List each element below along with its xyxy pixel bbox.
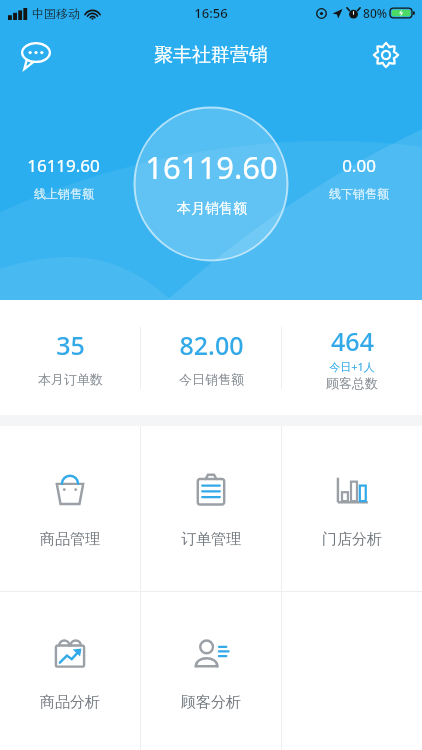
staticText: 本月订单数 (38, 371, 103, 387)
button[interactable]: 顾客分析 (141, 592, 281, 750)
button[interactable]: 门店分析 (282, 426, 422, 591)
button[interactable]: 82.00 (141, 300, 281, 415)
button[interactable]: 商品分析 (0, 592, 140, 750)
staticText: 订单管理 (181, 530, 241, 549)
staticText: 464 (331, 324, 374, 358)
staticText: 今日销售额 (179, 371, 244, 387)
staticText: 0.00 (342, 154, 376, 177)
button[interactable]: Messages (14, 33, 58, 77)
staticText: 顾客分析 (181, 693, 241, 712)
staticText: 中国移动 (32, 6, 80, 21)
staticText: 商品管理 (40, 530, 100, 549)
staticText: 16119.60 (27, 154, 100, 177)
staticText: 16:56 (194, 4, 228, 22)
button[interactable]: 464 (282, 300, 422, 415)
staticText: 16119.60 (145, 146, 278, 188)
staticText: 门店分析 (322, 530, 382, 549)
staticText: 80% (363, 5, 387, 21)
staticText: 聚丰社群营销 (154, 43, 268, 67)
staticText: 今日+1人 (329, 359, 375, 374)
staticText: 35 (56, 328, 85, 362)
button[interactable]: 商品管理 (0, 426, 140, 591)
button[interactable]: 35 (0, 300, 140, 415)
staticText: 顾客总数 (326, 375, 378, 391)
button[interactable]: 订单管理 (141, 426, 281, 591)
staticText: 本月销售额 (177, 200, 247, 218)
staticText: 线上销售额 (34, 186, 94, 201)
button[interactable]: Settings (364, 33, 408, 77)
staticText: 商品分析 (40, 693, 100, 712)
staticText: 82.00 (179, 328, 244, 362)
staticText: 线下销售额 (329, 186, 389, 201)
